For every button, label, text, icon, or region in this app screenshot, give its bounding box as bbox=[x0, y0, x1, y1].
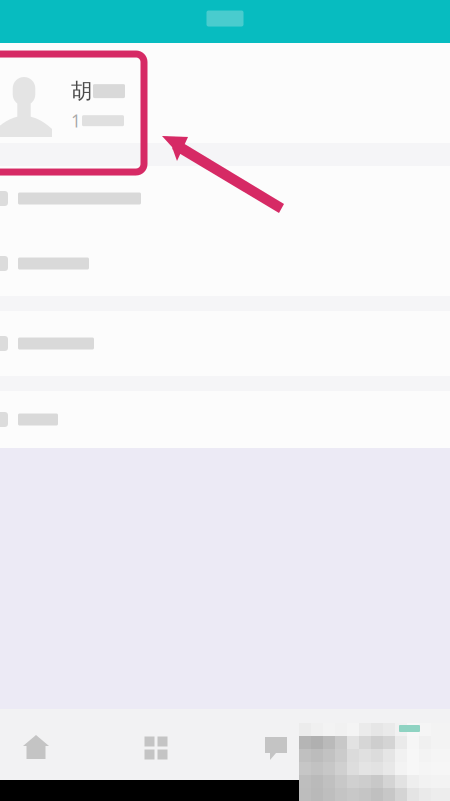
button[interactable]: 胡 bbox=[0, 43, 450, 143]
button[interactable] bbox=[0, 391, 450, 448]
button[interactable] bbox=[0, 166, 450, 231]
button[interactable] bbox=[0, 311, 450, 376]
button[interactable]: Home bbox=[0, 709, 96, 780]
button[interactable] bbox=[0, 231, 450, 296]
button[interactable]: Messages bbox=[216, 709, 336, 780]
button[interactable]: Profile bbox=[336, 709, 450, 780]
button[interactable]: Discover bbox=[96, 709, 216, 780]
staticText: 1 bbox=[71, 109, 81, 132]
staticText: 胡 bbox=[71, 78, 92, 104]
